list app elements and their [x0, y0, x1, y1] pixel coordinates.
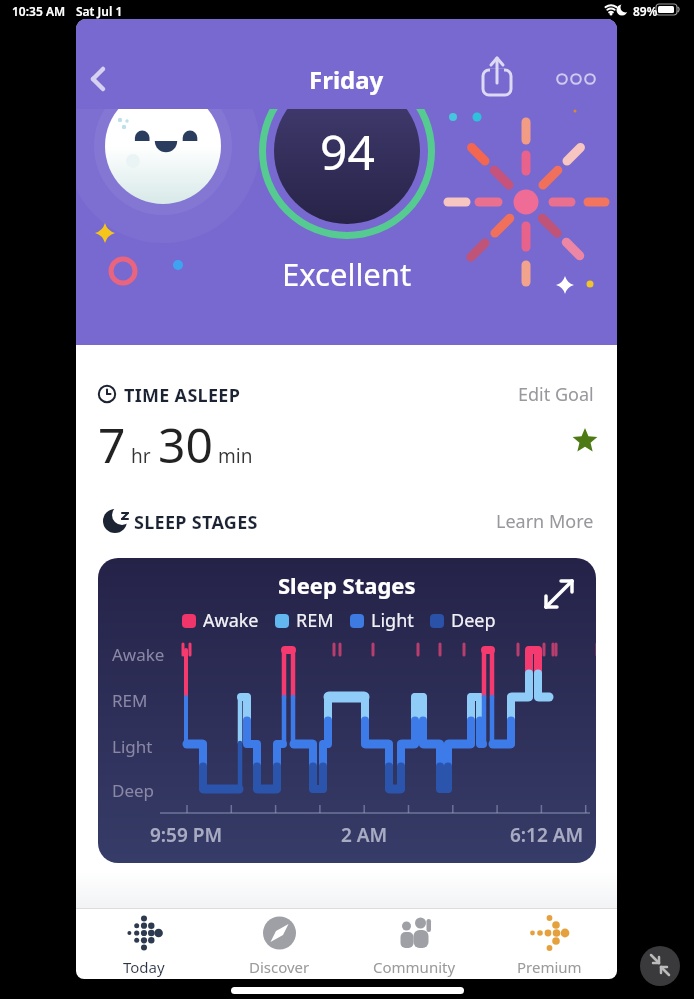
staticText: Light	[112, 735, 153, 758]
staticText: 6:12 AM	[510, 822, 584, 848]
button[interactable]	[78, 59, 122, 99]
staticText: Deep	[112, 779, 155, 802]
staticText: Friday	[309, 63, 384, 96]
staticText: 9:59 PM	[150, 822, 223, 848]
button[interactable]: Premium	[482, 909, 617, 979]
button[interactable]: Discover	[212, 909, 347, 979]
staticText: Community	[373, 957, 456, 977]
staticText: Learn More	[496, 509, 594, 534]
staticText: 89%	[633, 3, 658, 19]
staticText: Sleep Stages	[278, 570, 416, 600]
staticText: 10:35 AM	[12, 3, 66, 19]
staticText: Awake	[112, 643, 165, 666]
button[interactable]: Learn More	[484, 506, 594, 536]
button[interactable]	[640, 946, 680, 986]
button[interactable]	[479, 43, 517, 99]
button[interactable]	[552, 65, 600, 93]
button[interactable]: Sleep Stages	[98, 558, 596, 863]
staticText: REM	[296, 608, 334, 633]
staticText: Edit Goal	[518, 382, 594, 407]
staticText: 7	[98, 412, 126, 477]
staticText: Light	[371, 608, 414, 633]
button[interactable]: Edit Goal	[504, 379, 594, 409]
button[interactable]: Community	[347, 909, 482, 979]
staticText: REM	[112, 689, 148, 712]
staticText: Today	[123, 957, 165, 977]
staticText: Deep	[451, 608, 496, 633]
staticText: Excellent	[282, 253, 412, 295]
staticText: Awake	[203, 608, 259, 633]
staticText: Sat Jul 1	[76, 3, 123, 19]
staticText: 2 AM	[341, 822, 388, 848]
staticText: TIME ASLEEP	[124, 383, 241, 408]
staticText: Discover	[249, 957, 310, 977]
staticText: Premium	[517, 957, 582, 977]
button[interactable]: Today	[76, 909, 212, 979]
staticText: 30	[158, 412, 213, 477]
staticText: 94	[320, 119, 375, 184]
staticText: SLEEP STAGES	[134, 510, 258, 535]
staticText: min	[218, 443, 253, 469]
staticText: hr	[131, 443, 151, 469]
